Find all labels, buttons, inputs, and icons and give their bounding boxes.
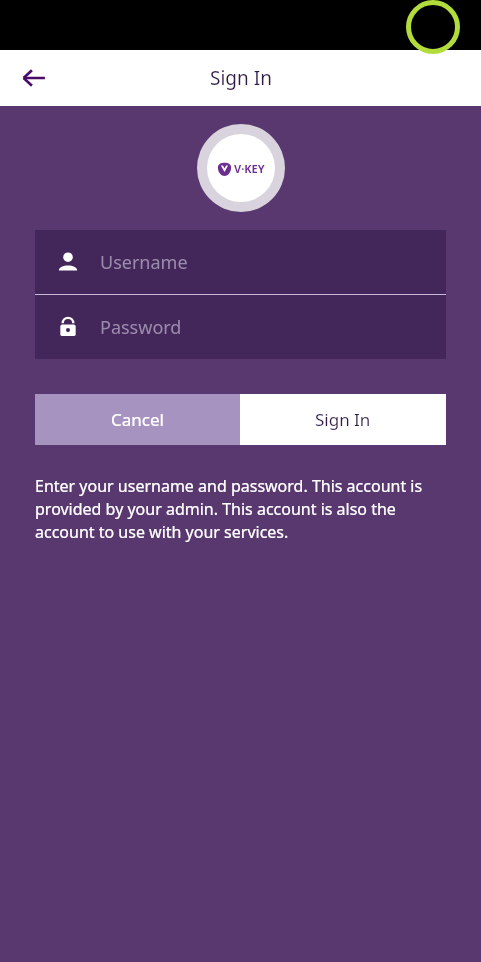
button[interactable]: Username [35, 230, 446, 294]
staticText: Enter your username and password. This a… [35, 475, 446, 543]
button[interactable]: Back [10, 54, 58, 102]
staticText: Sign In [210, 65, 272, 91]
staticText: Username [100, 250, 188, 275]
staticText: Password [100, 315, 182, 340]
button[interactable]: Cancel [35, 394, 240, 445]
button[interactable]: Password [35, 295, 446, 359]
button[interactable]: Sign In [240, 394, 446, 445]
staticText: Cancel [111, 408, 164, 431]
staticText: Sign In [315, 408, 371, 431]
staticText: V·KEY [234, 161, 265, 176]
